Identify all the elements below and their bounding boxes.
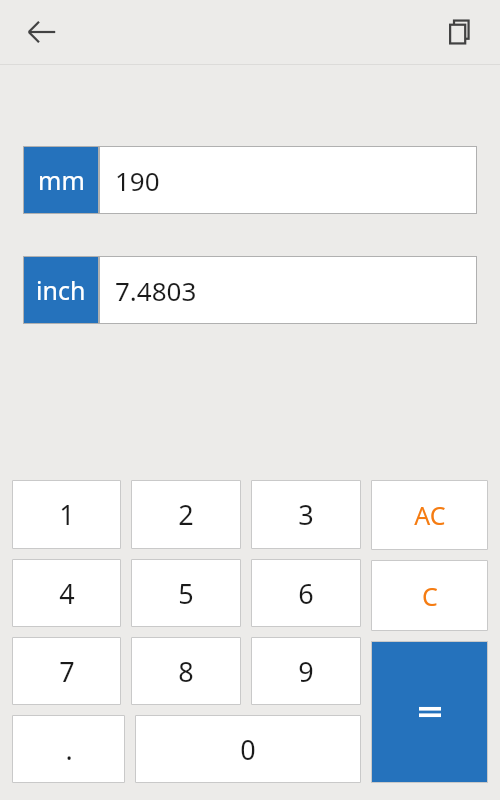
staticText: . <box>65 731 73 768</box>
staticText: 2 <box>178 496 194 533</box>
staticText: mm <box>38 163 85 197</box>
button[interactable]: 0 <box>135 715 361 783</box>
button[interactable]: 1 <box>12 480 121 549</box>
button[interactable]: 4 <box>12 559 121 627</box>
button[interactable]: 5 <box>131 559 241 627</box>
button[interactable]: Back <box>14 4 70 60</box>
staticText: 3 <box>298 496 314 533</box>
staticText: inch <box>36 273 86 307</box>
button[interactable]: AC <box>371 480 488 550</box>
button[interactable]: 2 <box>131 480 241 549</box>
button[interactable]: C <box>371 560 488 631</box>
staticText: 190 <box>115 163 160 198</box>
button[interactable]: 8 <box>131 637 241 705</box>
staticText: 8 <box>178 653 194 690</box>
button[interactable]: 9 <box>251 637 361 705</box>
staticText: 6 <box>298 575 314 612</box>
button[interactable]: 7 <box>12 637 121 705</box>
staticText: 4 <box>59 575 75 612</box>
button[interactable]: mm <box>23 146 477 214</box>
button[interactable]: . <box>12 715 125 783</box>
staticText: 0 <box>240 731 256 768</box>
button[interactable]: 3 <box>251 480 361 549</box>
staticText: 9 <box>298 653 314 690</box>
button[interactable]: 6 <box>251 559 361 627</box>
button[interactable]: inch <box>23 256 477 324</box>
staticText: 1 <box>59 496 75 533</box>
staticText: C <box>422 579 438 613</box>
button[interactable]: Copy <box>434 6 486 58</box>
staticText: 7.4803 <box>115 273 197 308</box>
staticText: 7 <box>59 653 75 690</box>
staticText: 5 <box>178 575 194 612</box>
button[interactable]: Equals <box>371 641 488 783</box>
staticText: AC <box>414 498 446 532</box>
